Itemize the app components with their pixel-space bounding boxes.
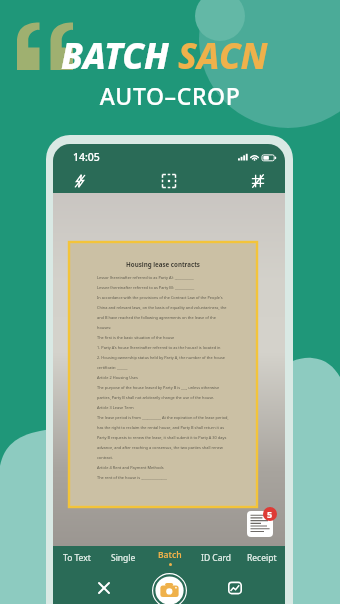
button[interactable]: Preview scans <box>247 511 273 537</box>
staticText: contract. <box>97 455 114 460</box>
staticText: and B have reached the following agreeme… <box>97 315 229 320</box>
staticText: has the right to reclaim the rental hous… <box>97 425 229 430</box>
button[interactable]: ID Card <box>198 551 235 565</box>
staticText: 14:05 <box>73 150 100 164</box>
staticText: ID Card <box>201 552 232 564</box>
button[interactable]: Auto crop <box>162 174 176 188</box>
button[interactable]: Single <box>108 551 139 565</box>
staticText: certificate: ______ <box>97 365 128 370</box>
button[interactable]: Grid off <box>251 174 265 188</box>
staticText: Batch <box>158 549 182 561</box>
staticText: parties, Party B shall not arbitrarily c… <box>97 395 215 400</box>
staticText: Receipt <box>247 552 277 564</box>
staticText: houses: <box>97 325 112 330</box>
staticText: Article 2 Housing Uses <box>97 375 138 380</box>
staticText: AUTO–CROP <box>0 80 340 111</box>
staticText: The lease period is from ___________ At … <box>97 415 229 420</box>
staticText: Lessor (hereinafter referred to as Party… <box>97 275 194 280</box>
staticText: SACN <box>178 32 268 80</box>
staticText: Article 3 Lease Term <box>97 405 134 410</box>
staticText: Article 4 Rent and Payment Methods <box>97 465 164 470</box>
staticText: 5 <box>267 508 273 520</box>
button[interactable]: Flash off <box>73 174 87 188</box>
staticText: Housing lease contracts <box>97 260 229 268</box>
button[interactable]: Batch <box>155 548 185 567</box>
staticText: Party B requests to renew the lease, it … <box>97 435 229 440</box>
staticText: The rent of the house is _______________ <box>97 475 168 480</box>
staticText: BATCH <box>61 32 178 80</box>
button[interactable]: Receipt <box>244 551 280 565</box>
staticText: In accordance with the provisions of the… <box>97 295 229 300</box>
staticText: Lessee (hereinafter referred to as Party… <box>97 285 195 290</box>
staticText: The first is the basic situation of the … <box>97 335 175 340</box>
staticText: advance, and after reaching a consensus,… <box>97 445 229 450</box>
staticText: 1. Party A's house (hereinafter referred… <box>97 345 229 350</box>
staticText: The purpose of the house leased by Party… <box>97 385 229 390</box>
staticText: To Text <box>63 552 91 564</box>
button[interactable]: To Text <box>60 551 94 565</box>
staticText: 2. Housing ownership status held by Part… <box>97 355 229 360</box>
staticText: China and relevant laws, on the basis of… <box>97 305 229 310</box>
staticText: Single <box>111 552 136 564</box>
button[interactable]: Gallery <box>228 581 242 595</box>
button[interactable]: Close <box>99 583 109 593</box>
button[interactable]: Shutter <box>152 573 187 604</box>
